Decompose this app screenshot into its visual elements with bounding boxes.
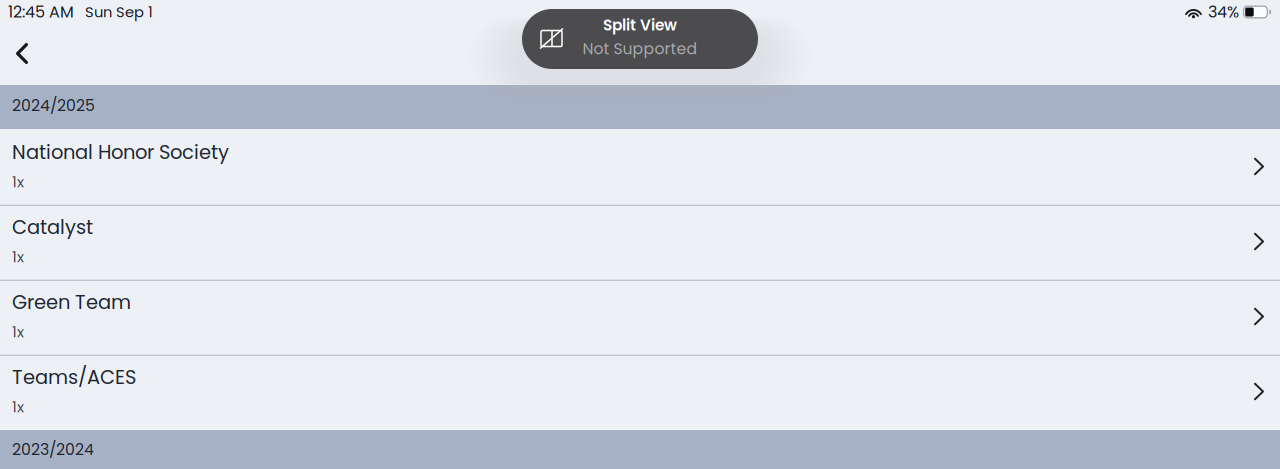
staticText: 2024/2025 [12,94,95,116]
staticText: National Honor Society [12,139,229,166]
staticText: Teams/ACES [12,364,136,391]
staticText: 34% [1208,1,1239,23]
button[interactable]: Green Team [0,279,1280,354]
staticText: 1x [12,247,24,267]
staticText: 1x [12,172,24,192]
staticText: Sun Sep 1 [85,2,153,22]
button[interactable]: Teams/ACES [0,354,1280,429]
button[interactable]: Catalyst [0,204,1280,279]
staticText: 1x [12,322,24,342]
button[interactable]: National Honor Society [0,129,1280,204]
staticText: Split View [603,14,677,36]
staticText: 1x [12,397,24,417]
button[interactable]: Back [0,31,44,77]
staticText: Not Supported [582,38,697,60]
staticText: Green Team [12,289,131,316]
staticText: 2023/2024 [12,438,94,460]
staticText: Catalyst [12,214,93,241]
staticText: 12:45 AM [8,1,74,23]
